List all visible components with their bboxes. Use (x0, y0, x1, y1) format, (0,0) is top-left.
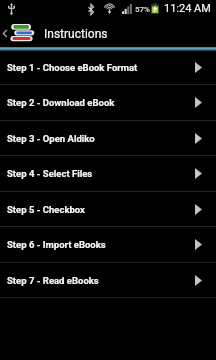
staticText: Step 3 - Open Aldiko (7, 133, 95, 144)
button[interactable]: Step 5 - Checkbox (0, 192, 216, 226)
staticText: Step 6 - Import eBooks (7, 239, 106, 250)
staticText: Step 5 - Checkbox (7, 204, 85, 215)
staticText: Step 4 - Select Files (7, 168, 93, 179)
staticText: 11:24 AM (164, 2, 211, 15)
button[interactable]: Step 3 - Open Aldiko (0, 121, 216, 155)
button[interactable]: Step 2 - Download eBook (0, 85, 216, 120)
button[interactable]: Step 6 - Import eBooks (0, 227, 216, 262)
button[interactable]: Step 1 - Choose eBook Format (0, 51, 216, 84)
staticText: Step 1 - Choose eBook Format (7, 62, 138, 73)
staticText: Step 2 - Download eBook (7, 97, 115, 108)
staticText: 57% (135, 5, 150, 14)
button[interactable]: Step 4 - Select Files (0, 156, 216, 191)
staticText: Step 7 - Read eBooks (7, 275, 99, 286)
staticText: Instructions (44, 27, 108, 41)
button[interactable]: Navigate up (0, 18, 38, 47)
button[interactable]: Step 7 - Read eBooks (0, 263, 216, 297)
